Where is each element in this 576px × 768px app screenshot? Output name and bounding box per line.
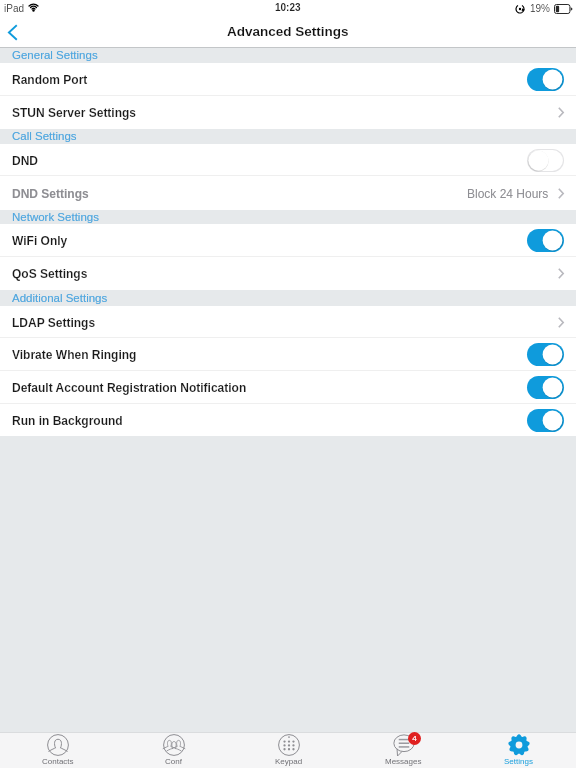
staticText: LDAP Settings: [12, 316, 558, 329]
staticText: QoS Settings: [12, 267, 558, 280]
staticText: Network Settings: [12, 211, 99, 224]
staticText: Block 24 Hours: [467, 187, 549, 200]
staticText: DND Settings: [12, 187, 467, 200]
staticText: Random Port: [12, 73, 527, 86]
button[interactable]: Keypad: [231, 733, 346, 768]
button[interactable]: 4: [346, 733, 461, 768]
staticText: Call Settings: [12, 130, 77, 143]
staticText: Default Account Registration Notificatio…: [12, 381, 527, 394]
staticText: 4: [412, 734, 417, 743]
staticText: WiFi Only: [12, 234, 527, 247]
button[interactable]: Back: [0, 16, 40, 48]
button[interactable]: Random Port: [0, 63, 576, 96]
staticText: Settings: [504, 757, 533, 766]
button[interactable]: Conf: [116, 733, 231, 768]
staticText: Keypad: [275, 757, 303, 766]
staticText: Vibrate When Ringing: [12, 348, 527, 361]
button[interactable]: Default Account Registration Notificatio…: [0, 371, 576, 404]
button[interactable]: DND Settings: [0, 176, 576, 210]
button[interactable]: Vibrate When Ringing: [0, 338, 576, 371]
staticText: General Settings: [12, 49, 98, 62]
staticText: iPad: [4, 3, 25, 14]
staticText: STUN Server Settings: [12, 106, 558, 119]
staticText: Messages: [385, 757, 422, 766]
button[interactable]: STUN Server Settings: [0, 96, 576, 129]
staticText: Run in Background: [12, 414, 527, 427]
button[interactable]: QoS Settings: [0, 257, 576, 290]
staticText: 10:23: [275, 2, 301, 13]
staticText: Advanced Settings: [227, 24, 349, 39]
staticText: Additional Settings: [12, 292, 108, 305]
staticText: Contacts: [42, 757, 74, 766]
button[interactable]: WiFi Only: [0, 224, 576, 257]
button[interactable]: Settings: [461, 733, 576, 768]
button[interactable]: DND: [0, 144, 576, 176]
staticText: Conf: [165, 757, 182, 766]
button[interactable]: Run in Background: [0, 404, 576, 436]
staticText: 19%: [530, 3, 551, 14]
button[interactable]: LDAP Settings: [0, 306, 576, 338]
button[interactable]: Contacts: [0, 733, 116, 768]
staticText: DND: [12, 154, 527, 167]
